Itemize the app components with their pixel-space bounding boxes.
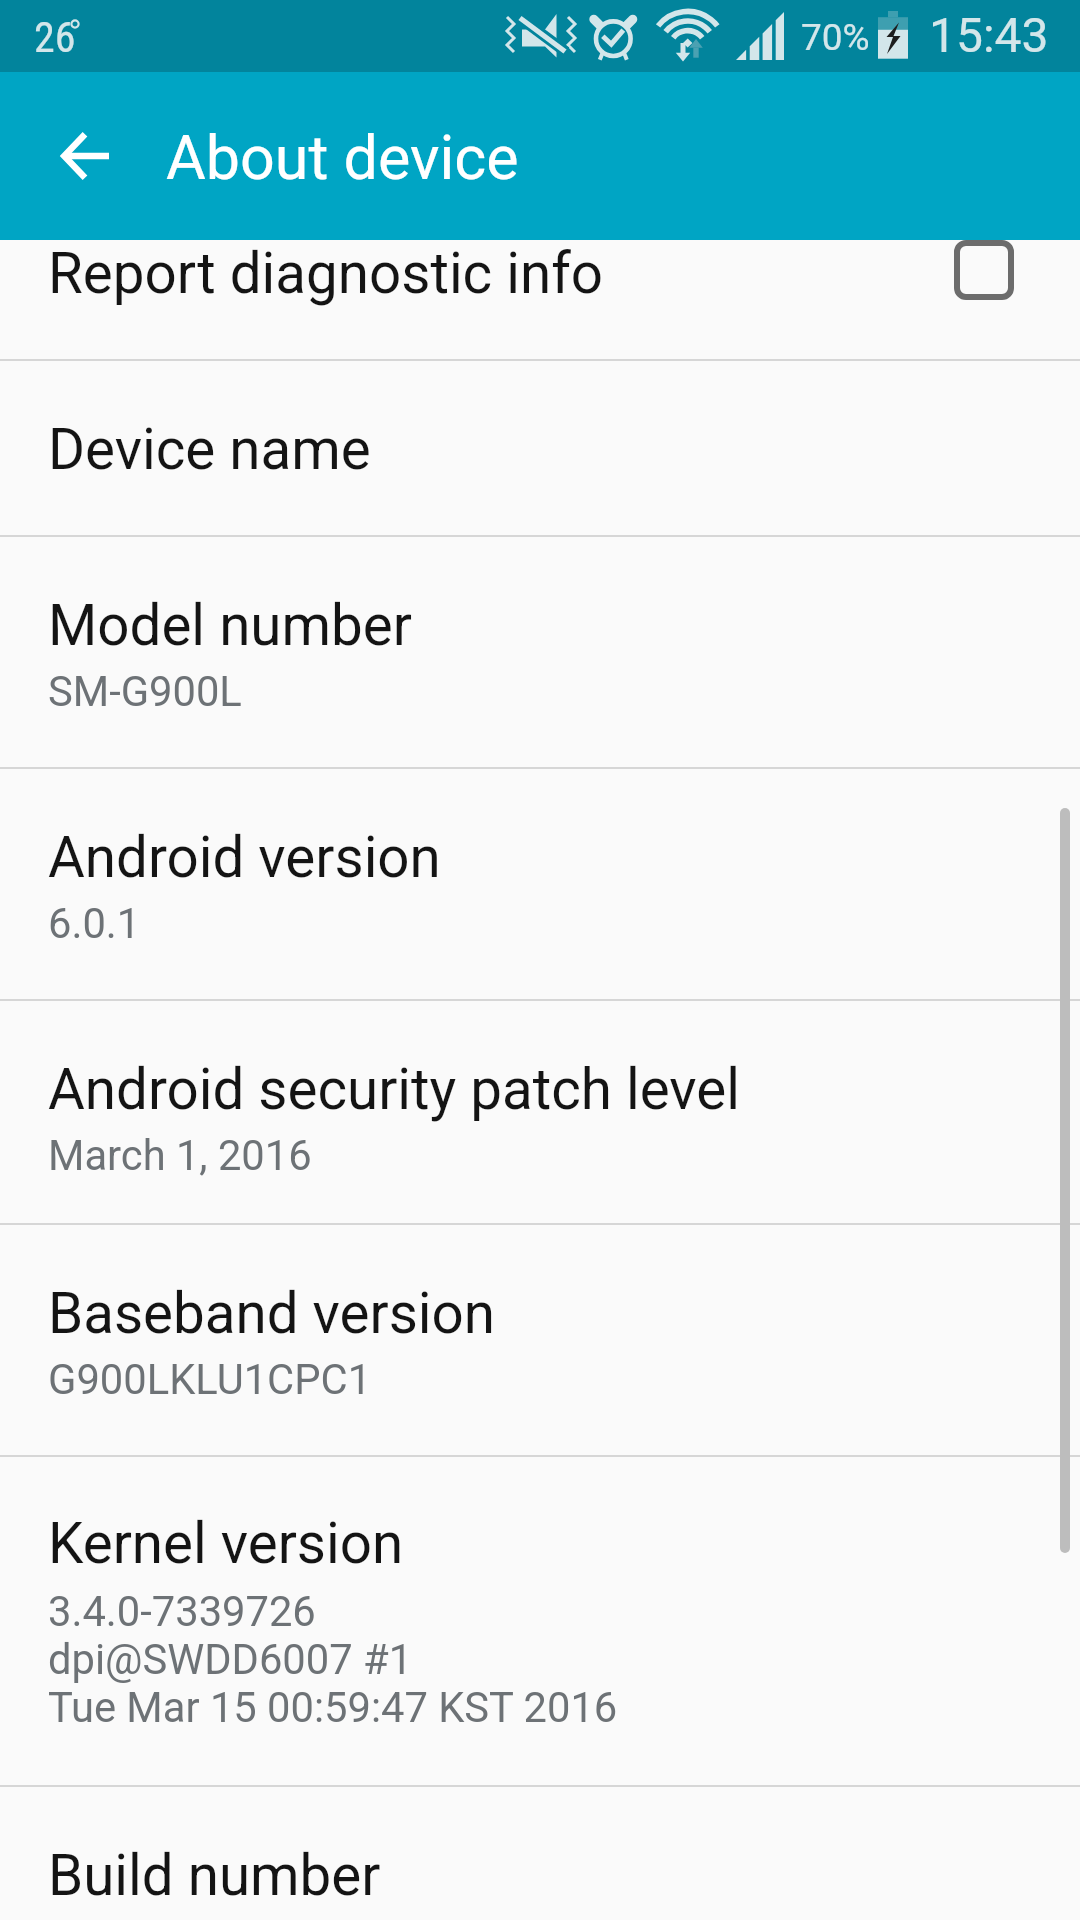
staticText: 15:43 [929,7,1049,63]
button[interactable]: Android security patch level [0,1001,1080,1223]
button[interactable]: Report diagnostic info checkbox [952,240,1016,303]
button[interactable]: Baseband version [0,1225,1080,1455]
staticText: Model number [48,593,412,659]
staticText: Android security patch level [48,1057,741,1123]
staticText: 6.0.1 [48,899,141,948]
staticText: Device name [48,417,371,483]
staticText: 26 [34,13,76,62]
staticText: Android version [48,825,441,891]
staticText: About device [166,122,519,193]
button[interactable]: Report diagnostic info [0,240,1080,359]
button[interactable]: Device name [0,361,1080,535]
staticText: Baseband version [48,1281,496,1347]
staticText: Report diagnostic info [48,241,604,307]
staticText: Build number [48,1843,381,1909]
staticText: 70% [801,16,870,59]
staticText: 3.4.0-7339726 dpi@SWDD6007 #1 Tue Mar 15… [48,1587,618,1732]
button[interactable]: Build number [0,1787,1080,1920]
button[interactable]: Kernel version [0,1457,1080,1785]
staticText: Kernel version [48,1511,404,1577]
staticText: March 1, 2016 [48,1131,312,1180]
button[interactable]: Back [0,72,168,240]
button[interactable]: Model number [0,537,1080,767]
staticText: SM-G900L [48,667,242,716]
button[interactable]: Android version [0,769,1080,999]
staticText: G900LKLU1CPC1 [48,1355,372,1404]
